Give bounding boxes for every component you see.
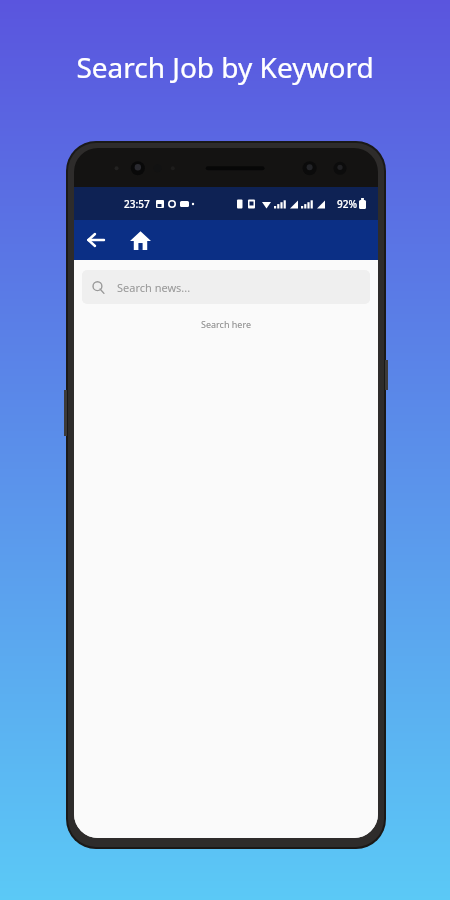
button[interactable]: Back <box>74 220 118 260</box>
staticText: 92% <box>337 197 357 211</box>
button[interactable]: Home <box>118 220 162 260</box>
button[interactable]: Search news... <box>82 270 370 304</box>
staticText: Search news... <box>117 280 191 295</box>
staticText: Search here <box>74 318 378 330</box>
staticText: 23:57 <box>124 197 150 211</box>
staticText: Search Job by Keyword <box>0 48 450 86</box>
